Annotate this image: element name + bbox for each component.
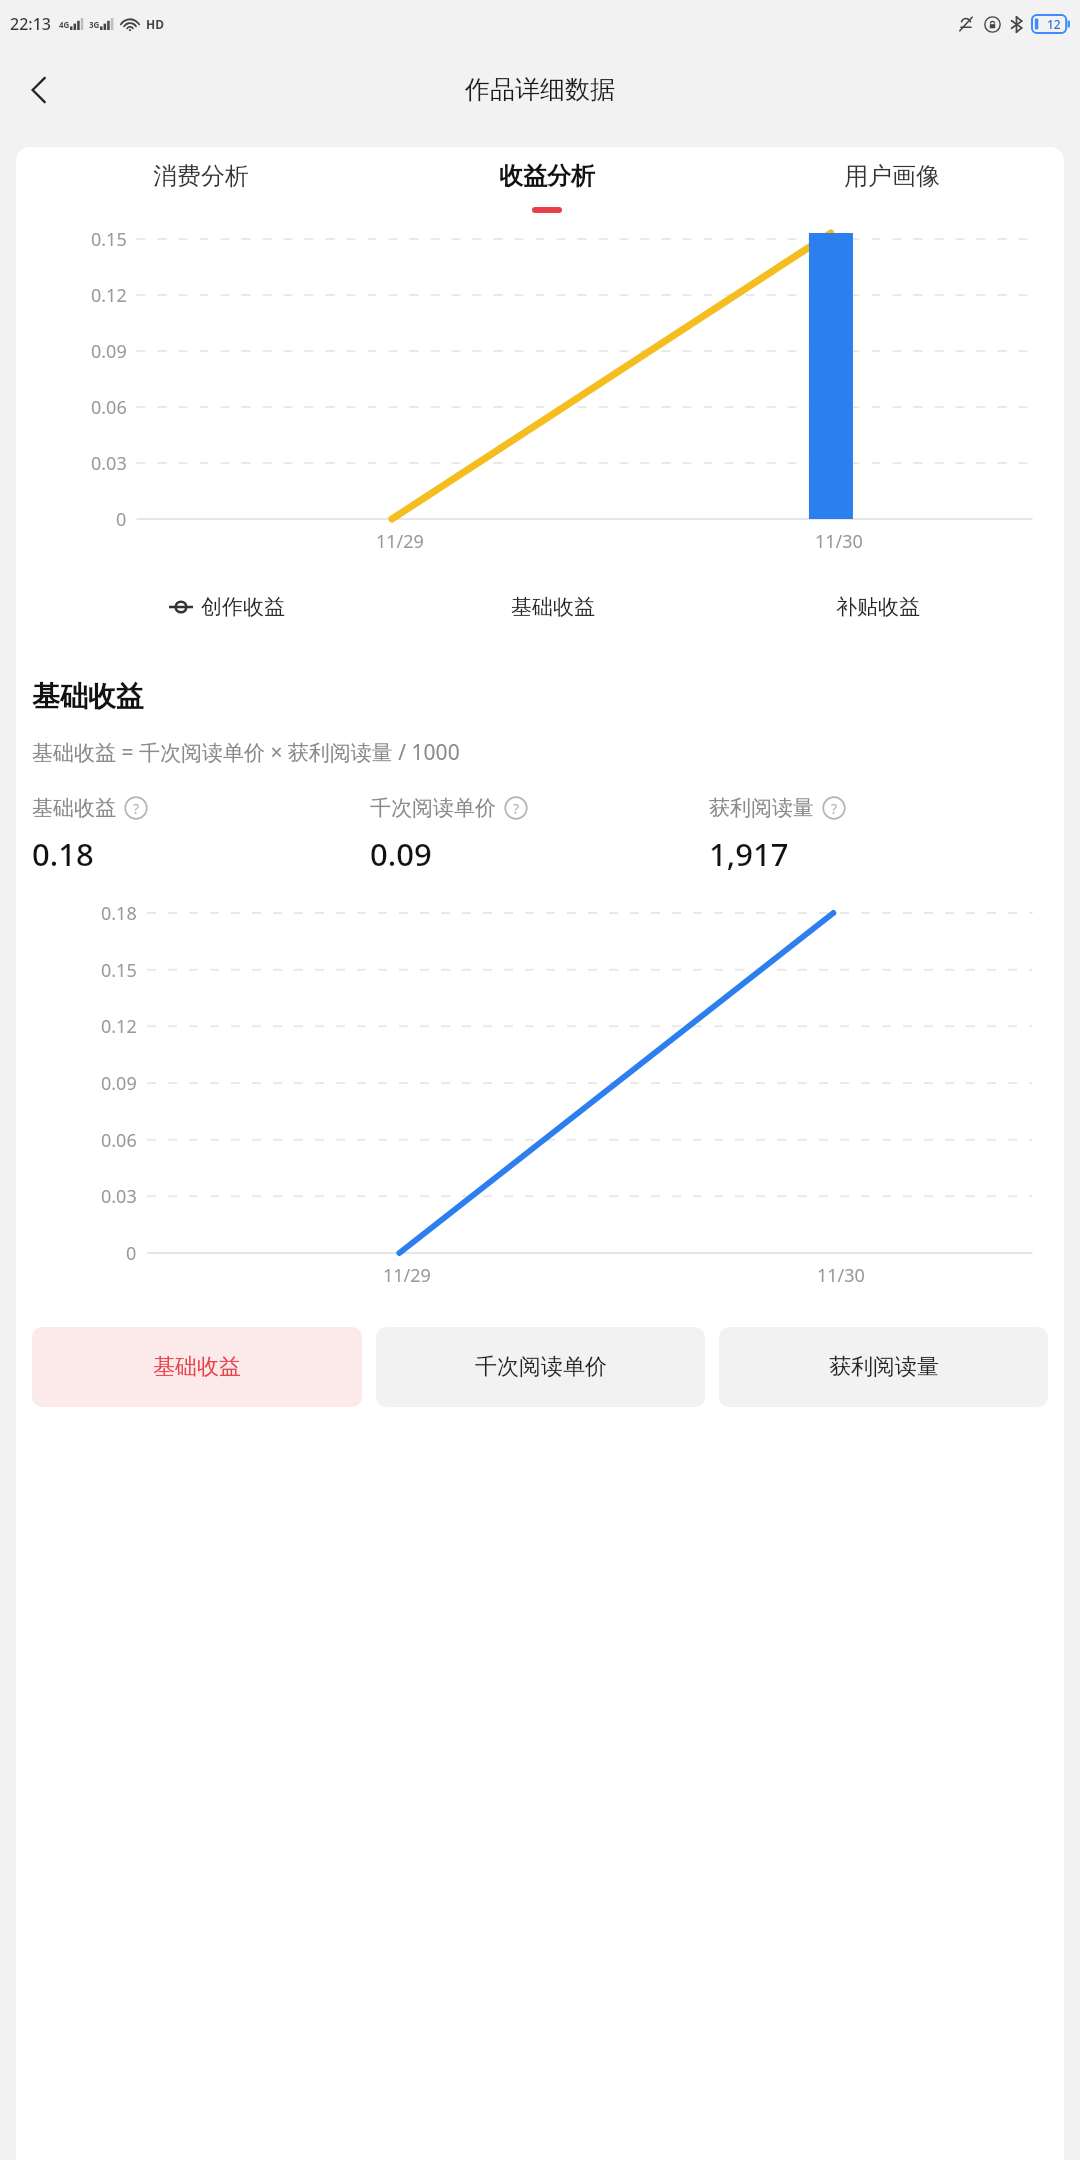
button[interactable]: 基础收益 (390, 577, 715, 637)
button[interactable]: 用户画像 (719, 147, 1064, 227)
staticText: 作品详细数据 (465, 74, 615, 105)
button[interactable]: 消费分析 (28, 147, 374, 227)
staticText: 基础收益 (32, 679, 144, 714)
staticText: 0 (116, 507, 127, 532)
staticText: 0 (126, 1241, 137, 1266)
staticText: 11/29 (383, 1263, 431, 1288)
staticText: 消费分析 (153, 161, 249, 191)
staticText: 0.06 (101, 1128, 137, 1153)
staticText: 0.09 (370, 833, 432, 875)
staticText: 4G (59, 19, 70, 30)
staticText: 1,917 (709, 833, 789, 875)
staticText: 收益分析 (499, 161, 595, 191)
staticText: 0.03 (91, 451, 127, 476)
staticText: ? (513, 799, 520, 818)
staticText: ? (831, 799, 838, 818)
staticText: 0.09 (101, 1071, 137, 1096)
button[interactable]: 收益分析 (374, 147, 719, 227)
staticText: 0.12 (91, 283, 127, 308)
staticText: 0.18 (32, 833, 94, 875)
staticText: 基础收益 (511, 594, 595, 620)
staticText: 11/29 (376, 529, 424, 554)
staticText: ? (133, 799, 140, 818)
staticText: 基础收益 (32, 795, 116, 821)
staticText: 0.15 (101, 958, 137, 983)
staticText: 22:13 (10, 13, 51, 35)
staticText: 创作收益 (201, 594, 285, 620)
staticText: 3G (89, 19, 100, 30)
staticText: 千次阅读单价 (370, 795, 496, 821)
staticText: 11/30 (815, 529, 863, 554)
staticText: 0.18 (101, 901, 137, 926)
staticText: 11/30 (817, 1263, 865, 1288)
staticText: 0.03 (101, 1184, 137, 1209)
staticText: 0.09 (91, 339, 127, 364)
staticText: 12 (1047, 16, 1061, 32)
staticText: 千次阅读单价 (475, 1353, 607, 1381)
staticText: 补贴收益 (836, 594, 920, 620)
staticText: 获利阅读量 (829, 1353, 939, 1381)
button[interactable]: 千次阅读单价 (376, 1327, 705, 1407)
staticText: 获利阅读量 (709, 795, 814, 821)
button[interactable]: 补贴收益 (715, 577, 1040, 637)
button[interactable]: 创作收益 (64, 577, 390, 637)
staticText: 0.06 (91, 395, 127, 420)
staticText: 基础收益 = 千次阅读单价 × 获利阅读量 / 1000 (32, 738, 460, 767)
button[interactable]: 获利阅读量 (719, 1327, 1048, 1407)
staticText: 0.15 (91, 227, 127, 252)
staticText: 基础收益 (153, 1353, 241, 1381)
button[interactable]: Back (10, 61, 68, 119)
staticText: 0.12 (101, 1014, 137, 1039)
staticText: 用户画像 (844, 161, 940, 191)
staticText: HD (146, 16, 164, 32)
button[interactable]: 基础收益 (32, 1327, 362, 1407)
